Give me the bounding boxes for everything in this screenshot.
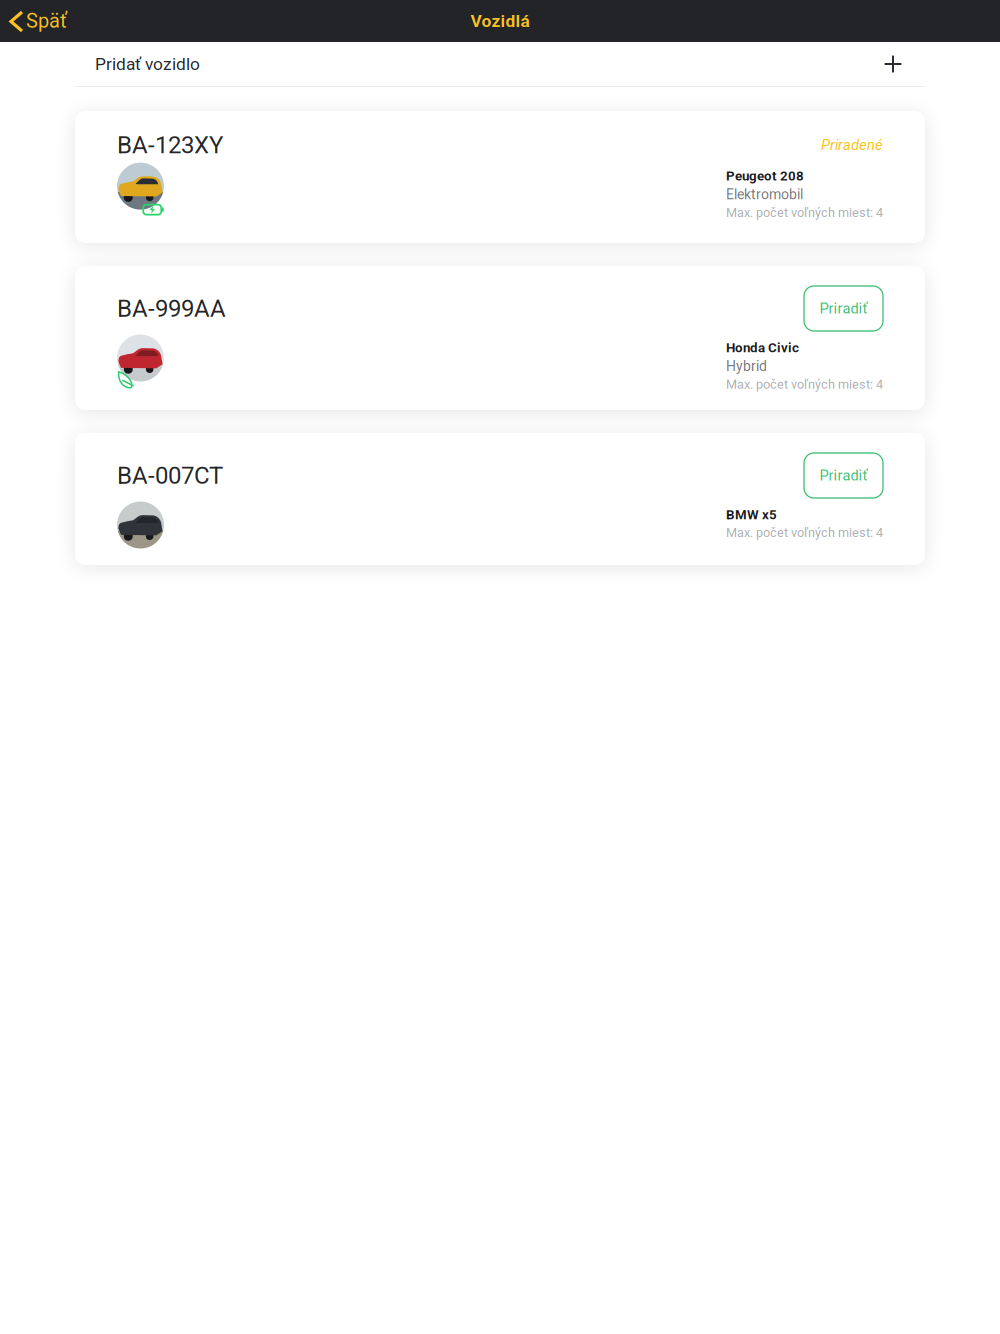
staticText: Max. počet voľných miest: 4 <box>726 205 883 220</box>
staticText: BA-123XY <box>117 131 223 159</box>
staticText: Honda Civic <box>726 340 799 356</box>
staticText: Pridať vozidlo <box>95 54 200 74</box>
staticText: Peugeot 208 <box>726 168 804 184</box>
staticText: BA-999AA <box>117 294 226 322</box>
staticText: Priradené <box>821 136 883 154</box>
button[interactable]: Priradiť <box>804 453 883 498</box>
staticText: Priradiť <box>819 467 867 484</box>
button[interactable]: Pridať vozidlo <box>0 42 1000 87</box>
staticText: Max. počet voľných miest: 4 <box>726 525 883 540</box>
button[interactable]: Späť <box>0 0 77 42</box>
staticText: Max. počet voľných miest: 4 <box>726 377 883 392</box>
staticText: BA-007CT <box>117 461 223 489</box>
staticText: Priradiť <box>819 300 867 317</box>
staticText: Hybrid <box>726 358 767 374</box>
button[interactable]: Priradiť <box>804 286 883 331</box>
staticText: Späť <box>26 9 67 33</box>
staticText: Elektromobil <box>726 186 803 203</box>
staticText: Vozidlá <box>470 11 529 31</box>
staticText: BMW x5 <box>726 507 777 523</box>
